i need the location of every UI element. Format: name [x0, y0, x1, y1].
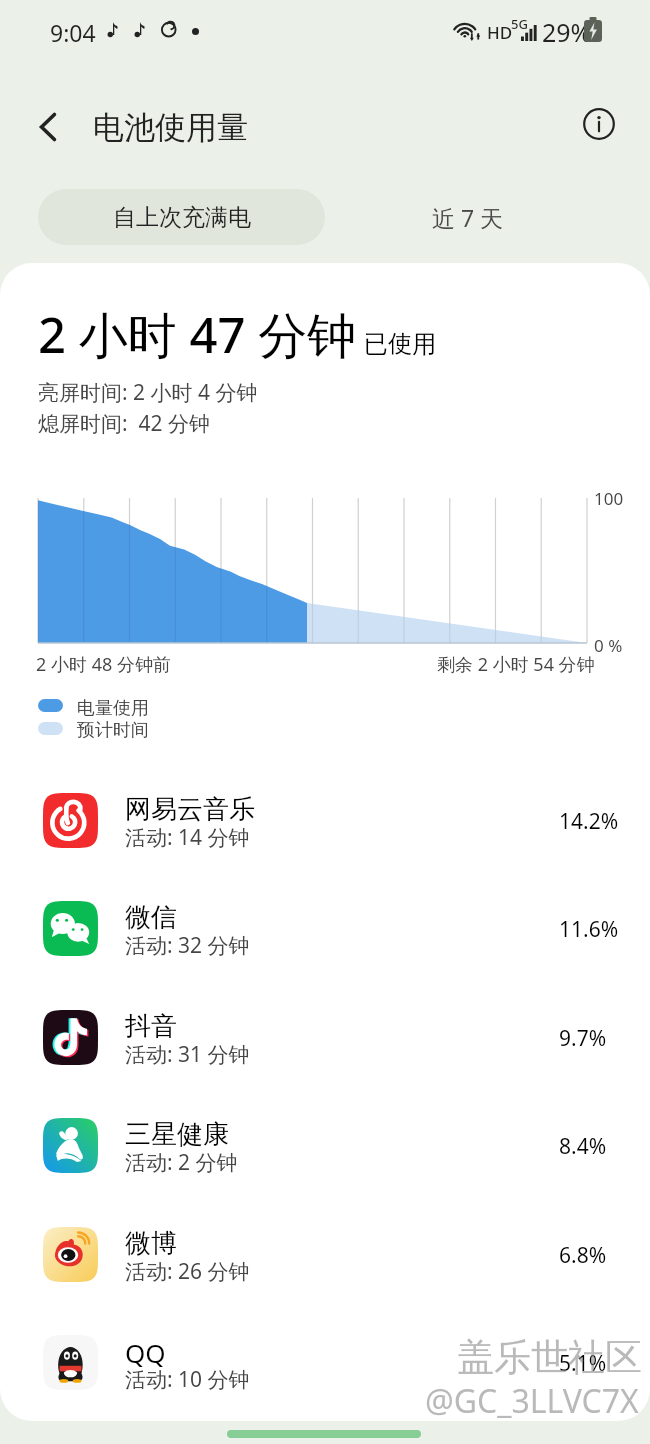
staticText: HD: [487, 21, 513, 44]
staticText: 2 小时 48 分钟前: [36, 652, 171, 677]
staticText: 0 %: [594, 634, 623, 657]
staticText: 电量使用: [77, 697, 149, 720]
button[interactable]: QQ: [0, 1308, 650, 1416]
button[interactable]: 网易云音乐: [0, 766, 650, 874]
staticText: 微博: [125, 1227, 177, 1260]
staticText: 8.4%: [559, 1132, 607, 1161]
staticText: 2 小时 47 分钟: [38, 301, 357, 368]
staticText: 盖乐世社区: [457, 1334, 642, 1381]
staticText: 网易云音乐: [125, 793, 255, 826]
button[interactable]: 三星健康: [0, 1091, 650, 1199]
staticText: 预计时间: [77, 719, 149, 742]
staticText: 29%: [542, 15, 592, 49]
staticText: 剩余 2 小时 54 分钟: [437, 652, 595, 677]
button[interactable]: 近 7 天: [373, 189, 563, 245]
staticText: 活动: 2 分钟: [125, 1148, 238, 1177]
staticText: 自上次充满电: [113, 203, 251, 232]
button[interactable]: Information: [572, 97, 626, 151]
button[interactable]: 自上次充满电: [38, 189, 325, 245]
staticText: 三星健康: [125, 1118, 229, 1151]
staticText: 抖音: [125, 1010, 177, 1043]
staticText: 活动: 14 分钟: [125, 823, 250, 852]
button[interactable]: 抖音: [0, 983, 650, 1091]
staticText: 活动: 31 分钟: [125, 1040, 250, 1069]
staticText: 5.1%: [559, 1349, 607, 1378]
staticText: 11.6%: [559, 915, 619, 944]
staticText: 电池使用量: [93, 108, 248, 147]
staticText: 100: [594, 487, 624, 510]
staticText: 亮屏时间: 2 小时 4 分钟: [38, 378, 258, 407]
staticText: @GC_3LLVC7X: [425, 1379, 639, 1423]
staticText: 近 7 天: [432, 202, 504, 233]
button[interactable]: Back: [24, 102, 74, 152]
staticText: 6.8%: [559, 1241, 607, 1270]
staticText: 活动: 26 分钟: [125, 1257, 250, 1286]
staticText: 活动: 32 分钟: [125, 931, 250, 960]
staticText: 微信: [125, 901, 177, 934]
staticText: 已使用: [364, 329, 436, 359]
button[interactable]: 微博: [0, 1200, 650, 1308]
button[interactable]: 微信: [0, 874, 650, 982]
staticText: 熄屏时间: 42 分钟: [38, 409, 211, 438]
staticText: 9.7%: [559, 1024, 607, 1053]
staticText: 14.2%: [559, 807, 619, 836]
staticText: QQ: [125, 1335, 166, 1370]
staticText: 活动: 10 分钟: [125, 1365, 250, 1394]
staticText: 5G: [511, 15, 528, 33]
staticText: 9:04: [50, 17, 96, 48]
